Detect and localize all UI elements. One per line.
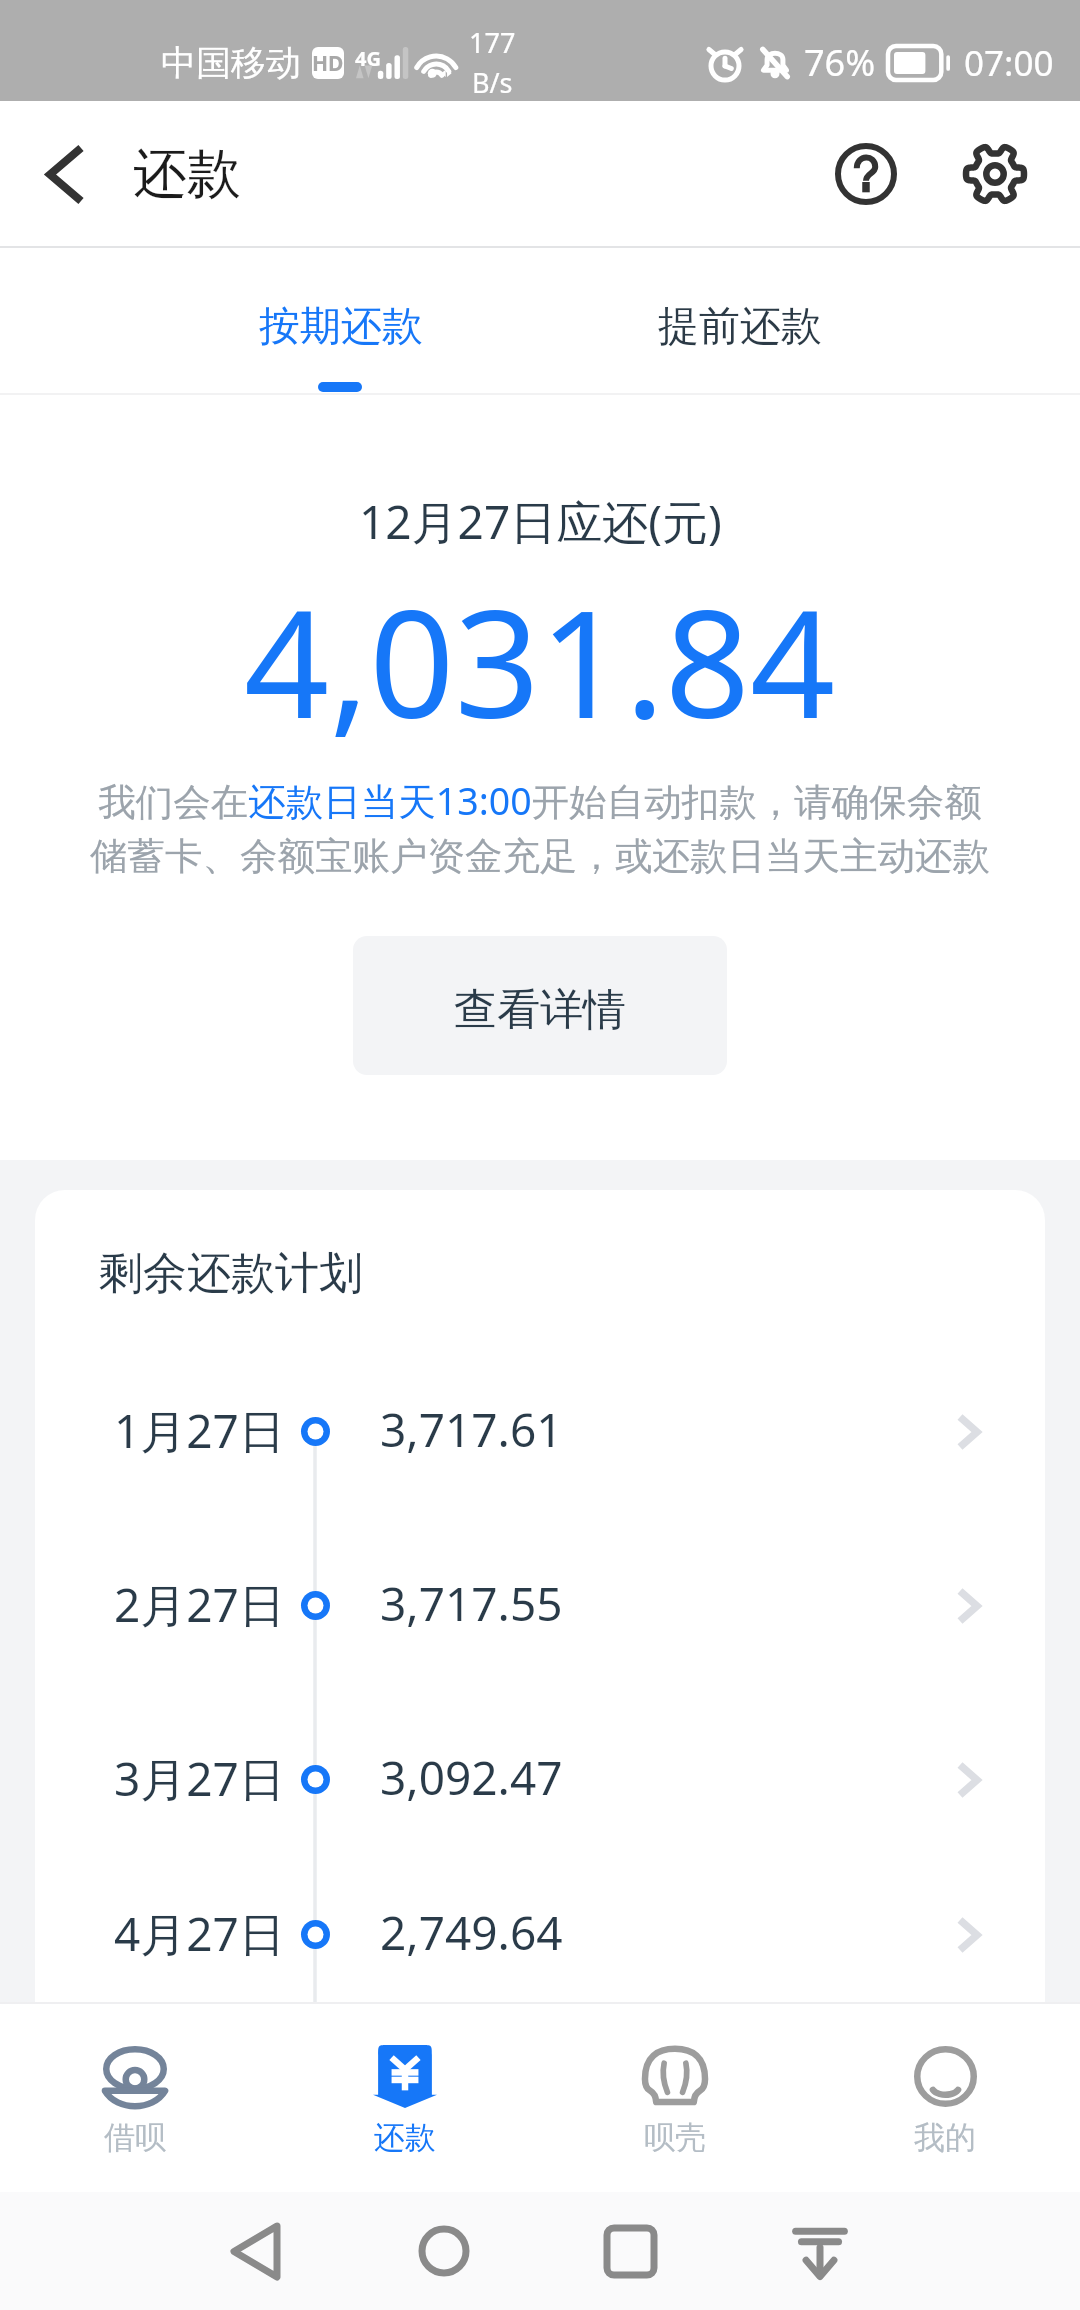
- staticText: 中国移动: [161, 41, 301, 85]
- button[interactable]: 4月27日: [35, 1866, 1045, 2002]
- staticText: 4G: [355, 45, 381, 72]
- button[interactable]: Help: [823, 131, 909, 217]
- button[interactable]: Recent apps: [580, 2201, 680, 2301]
- staticText: 07:00: [964, 39, 1054, 87]
- staticText: 4,031.84: [244, 559, 836, 762]
- button[interactable]: Back: [10, 119, 120, 229]
- staticText: 按期还款: [259, 301, 423, 353]
- button[interactable]: 借呗: [0, 2004, 270, 2192]
- button[interactable]: 1月27日: [35, 1344, 1045, 1518]
- button[interactable]: 查看详情: [353, 936, 727, 1075]
- button[interactable]: Settings: [952, 131, 1038, 217]
- button[interactable]: 2月27日: [35, 1518, 1045, 1692]
- button[interactable]: 还款: [270, 2004, 540, 2192]
- staticText: 3月27日: [114, 1747, 285, 1810]
- staticText: 2月27日: [114, 1573, 285, 1636]
- staticText: 4月27日: [114, 1902, 285, 1965]
- staticText: 2,749.64: [380, 1901, 563, 1964]
- staticText: 我们会在还款日当天13:00开始自动扣款，请确保余额储蓄卡、余额宝账户资金充足，…: [80, 775, 1000, 880]
- staticText: 提前还款: [658, 301, 822, 353]
- staticText: 借呗: [104, 2118, 166, 2157]
- staticText: 还款: [374, 2118, 436, 2157]
- staticText: 还款: [133, 140, 241, 208]
- button[interactable]: Home: [394, 2201, 494, 2301]
- button[interactable]: 提前还款: [605, 248, 875, 393]
- staticText: 查看详情: [454, 983, 626, 1037]
- staticText: 76%: [804, 38, 876, 87]
- staticText: 3,092.47: [380, 1746, 563, 1809]
- staticText: 我的: [914, 2118, 976, 2157]
- button[interactable]: 按期还款: [206, 248, 476, 393]
- button[interactable]: Back: [205, 2201, 305, 2301]
- staticText: 1月27日: [114, 1399, 285, 1462]
- staticText: 剩余还款计划: [99, 1246, 363, 1301]
- staticText: 呗壳: [644, 2118, 706, 2157]
- staticText: 12月27日应还(元): [359, 490, 722, 553]
- staticText: 3,717.55: [380, 1572, 563, 1635]
- button[interactable]: 我的: [810, 2004, 1080, 2192]
- staticText: B/s: [472, 64, 513, 101]
- button[interactable]: 3月27日: [35, 1692, 1045, 1866]
- button[interactable]: Hide navigation bar: [770, 2201, 870, 2301]
- button[interactable]: 呗壳: [540, 2004, 810, 2192]
- staticText: 3,717.61: [380, 1398, 563, 1461]
- staticText: 177: [469, 24, 516, 61]
- staticText: HD: [312, 49, 344, 78]
